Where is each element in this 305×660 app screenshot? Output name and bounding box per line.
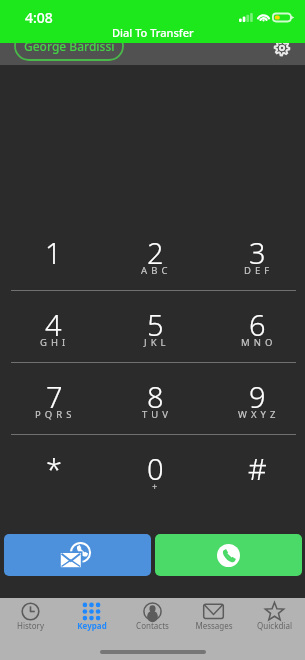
staticText: 6 (249, 305, 266, 344)
staticText: 5 (147, 305, 164, 344)
staticText: A B C (141, 264, 169, 277)
staticText: * (46, 449, 62, 488)
button[interactable]: George Bardissi (14, 43, 124, 61)
staticText: M N O (241, 336, 274, 349)
button[interactable]: * (0, 435, 101, 507)
button[interactable]: 4 (0, 291, 101, 363)
staticText: G H I (40, 336, 67, 349)
button[interactable]: Settings (270, 43, 294, 59)
staticText: 9 (249, 377, 266, 416)
staticText: Quickdial (257, 620, 292, 631)
staticText: 1 (45, 233, 62, 272)
staticText: + (152, 480, 159, 493)
button[interactable]: 6 (203, 291, 305, 363)
button[interactable]: 3 (203, 219, 305, 291)
staticText: W X Y Z (238, 408, 277, 421)
button[interactable]: History (0, 598, 61, 640)
button[interactable]: 2 (101, 219, 203, 291)
staticText: T U V (142, 408, 169, 421)
staticText: 0 (147, 449, 164, 488)
staticText: # (248, 449, 267, 488)
staticText: 4 (45, 305, 62, 344)
staticText: 7 (46, 377, 63, 416)
staticText: George Bardissi (24, 43, 115, 54)
staticText: J K L (144, 336, 167, 349)
staticText: D E F (244, 264, 271, 277)
button[interactable]: # (203, 435, 305, 507)
button[interactable]: 7 (0, 363, 101, 435)
button[interactable]: Contacts (122, 598, 183, 640)
staticText: 3 (249, 233, 266, 272)
staticText: Contacts (136, 620, 169, 631)
staticText: 4:08 (25, 8, 53, 27)
button[interactable]: 5 (101, 291, 203, 363)
staticText: 2 (147, 233, 164, 272)
button[interactable]: Keypad (61, 598, 122, 640)
staticText: Messages (195, 620, 233, 631)
button[interactable]: 1 (0, 219, 101, 291)
button[interactable]: Messages (183, 598, 244, 640)
button[interactable]: Quickdial (244, 598, 305, 640)
button[interactable]: 9 (203, 363, 305, 435)
staticText: Dial To Transfer (112, 25, 194, 40)
button[interactable]: Transfer to voicemail (4, 534, 151, 576)
button[interactable]: Call (155, 534, 302, 576)
staticText: P Q R S (35, 408, 73, 421)
staticText: 8 (147, 377, 164, 416)
button[interactable]: 8 (101, 363, 203, 435)
staticText: History (17, 620, 44, 631)
staticText: Keypad (77, 620, 107, 631)
button[interactable]: 0 (101, 435, 203, 507)
